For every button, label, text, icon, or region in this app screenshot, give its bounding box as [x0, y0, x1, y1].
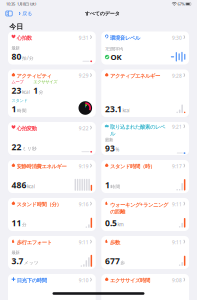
staticText: 9:10	[79, 277, 89, 283]
staticText: 歩数	[110, 239, 120, 246]
staticText: 最新	[105, 137, 113, 142]
button[interactable]: 歩数	[101, 236, 189, 269]
staticText: 心拍変動	[17, 125, 37, 132]
staticText: 最新	[12, 45, 20, 51]
staticText: 心拍数	[17, 34, 32, 41]
button[interactable]: スタンド時間（分）	[8, 198, 96, 231]
button[interactable]: アクティブエネルギー	[101, 69, 189, 117]
staticText: エクササイズ時間	[110, 277, 150, 284]
staticText: 日光下の時間	[17, 277, 47, 284]
staticText: 拍/分	[22, 55, 34, 61]
staticText: 分	[39, 89, 44, 95]
staticText: 9:11	[172, 201, 182, 207]
staticText: 9:21	[172, 124, 182, 130]
staticText: 9:29	[79, 72, 89, 79]
staticText: 486	[12, 179, 27, 191]
button[interactable]: スタンド時間（時）	[101, 160, 189, 193]
staticText: 9:11	[79, 239, 89, 245]
button[interactable]: サイドバー	[0, 8, 16, 19]
button[interactable]: 歩行エフォート	[8, 236, 96, 269]
button[interactable]: 環境音レベル	[101, 31, 189, 64]
staticText: 67%	[178, 1, 185, 7]
staticText: 23.1	[105, 103, 122, 115]
staticText: 歩行エフォート	[17, 239, 52, 246]
staticText: 1	[33, 85, 38, 96]
staticText: 戻る	[22, 10, 32, 17]
staticText: スタンド	[12, 98, 28, 103]
staticText: 9:22	[79, 125, 89, 131]
staticText: 23	[12, 85, 22, 96]
staticText: 時間	[17, 108, 27, 114]
button[interactable]: ウォーキング+ランニングの距離	[101, 198, 189, 231]
staticText: 3.7	[12, 255, 24, 267]
staticText: %	[115, 147, 119, 153]
staticText: すべてのデータ	[85, 10, 120, 17]
staticText: 11	[12, 217, 22, 229]
staticText: 93	[105, 142, 115, 154]
staticText: 22	[12, 141, 22, 153]
button[interactable]: 日光下の時間	[8, 274, 96, 300]
staticText: 7日間平均	[105, 46, 123, 52]
staticText: 取り込まれた酸素のレベル	[110, 124, 165, 137]
staticText: 歩	[120, 260, 125, 266]
staticText: 10:35 1月8日 (水)	[6, 1, 36, 7]
staticText: 1	[105, 179, 110, 191]
button[interactable]: 戻る	[16, 8, 35, 19]
staticText: 0.5	[105, 217, 117, 229]
staticText: スタンド時間（時）	[110, 163, 155, 170]
button[interactable]: 取り込まれた酸素のレベル	[101, 122, 189, 155]
button[interactable]: 安静時消費エネルギー	[8, 160, 96, 193]
staticText: 分	[22, 222, 27, 228]
button[interactable]: エクササイズ時間	[101, 274, 189, 300]
staticText: 9:30	[172, 34, 182, 41]
staticText: 677	[105, 255, 120, 267]
button[interactable]: アクティビティ	[8, 69, 96, 117]
staticText: 最新	[12, 250, 20, 255]
staticText: 9:16	[79, 201, 89, 207]
staticText: アクティブエネルギー	[110, 72, 160, 79]
staticText: OK	[110, 52, 121, 62]
staticText: kcal	[22, 89, 30, 95]
staticText: 9:11	[172, 239, 182, 245]
staticText: メッツ	[24, 260, 39, 266]
staticText: スタンド時間（分）	[17, 201, 62, 208]
staticText: 9:31	[79, 34, 89, 41]
staticText: 9:19	[79, 163, 89, 169]
staticText: エクササイズ	[33, 79, 57, 85]
staticText: 今日	[9, 22, 23, 31]
staticText: 環境音レベル	[110, 34, 140, 41]
staticText: 1	[12, 103, 17, 115]
staticText: 80	[12, 51, 22, 62]
staticText: 9:28	[172, 72, 182, 79]
staticText: アクティビティ	[17, 72, 52, 79]
staticText: ウォーキング+ランニングの距離	[110, 201, 168, 215]
staticText: 9:08	[172, 277, 182, 283]
staticText: 9:17	[172, 163, 182, 169]
staticText: kcal	[122, 107, 130, 114]
staticText: ミリ秒	[22, 146, 37, 152]
staticText: ムーブ	[12, 79, 24, 85]
button[interactable]: 心拍変動	[8, 122, 96, 155]
staticText: 時間	[110, 184, 120, 190]
staticText: km	[117, 221, 123, 228]
staticText: kcal	[27, 183, 35, 190]
staticText: 安静時消費エネルギー	[17, 163, 67, 170]
button[interactable]: 心拍数	[8, 31, 96, 64]
